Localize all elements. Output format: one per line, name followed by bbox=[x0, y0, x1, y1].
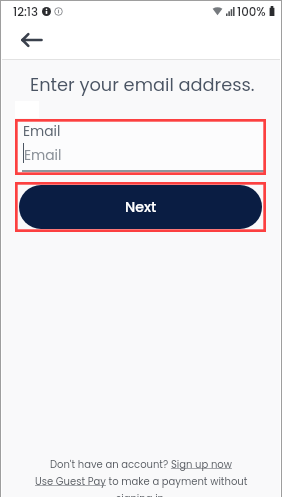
staticText: Email bbox=[23, 122, 61, 141]
staticText: Next bbox=[125, 197, 157, 217]
button[interactable]: Use Guest Pay to make a payment without bbox=[35, 474, 248, 488]
staticText: 12:13 bbox=[13, 4, 38, 21]
staticText: Email bbox=[24, 146, 62, 165]
staticText: Enter your email address. bbox=[30, 72, 255, 97]
staticText: 100% bbox=[237, 4, 266, 21]
button[interactable]: Next bbox=[19, 185, 262, 229]
staticText: signing in. bbox=[116, 491, 167, 497]
button[interactable]: Don't have an account? Sign up now bbox=[50, 457, 232, 471]
button[interactable]: Back bbox=[12, 25, 42, 55]
button[interactable]: Email bbox=[17, 121, 264, 173]
